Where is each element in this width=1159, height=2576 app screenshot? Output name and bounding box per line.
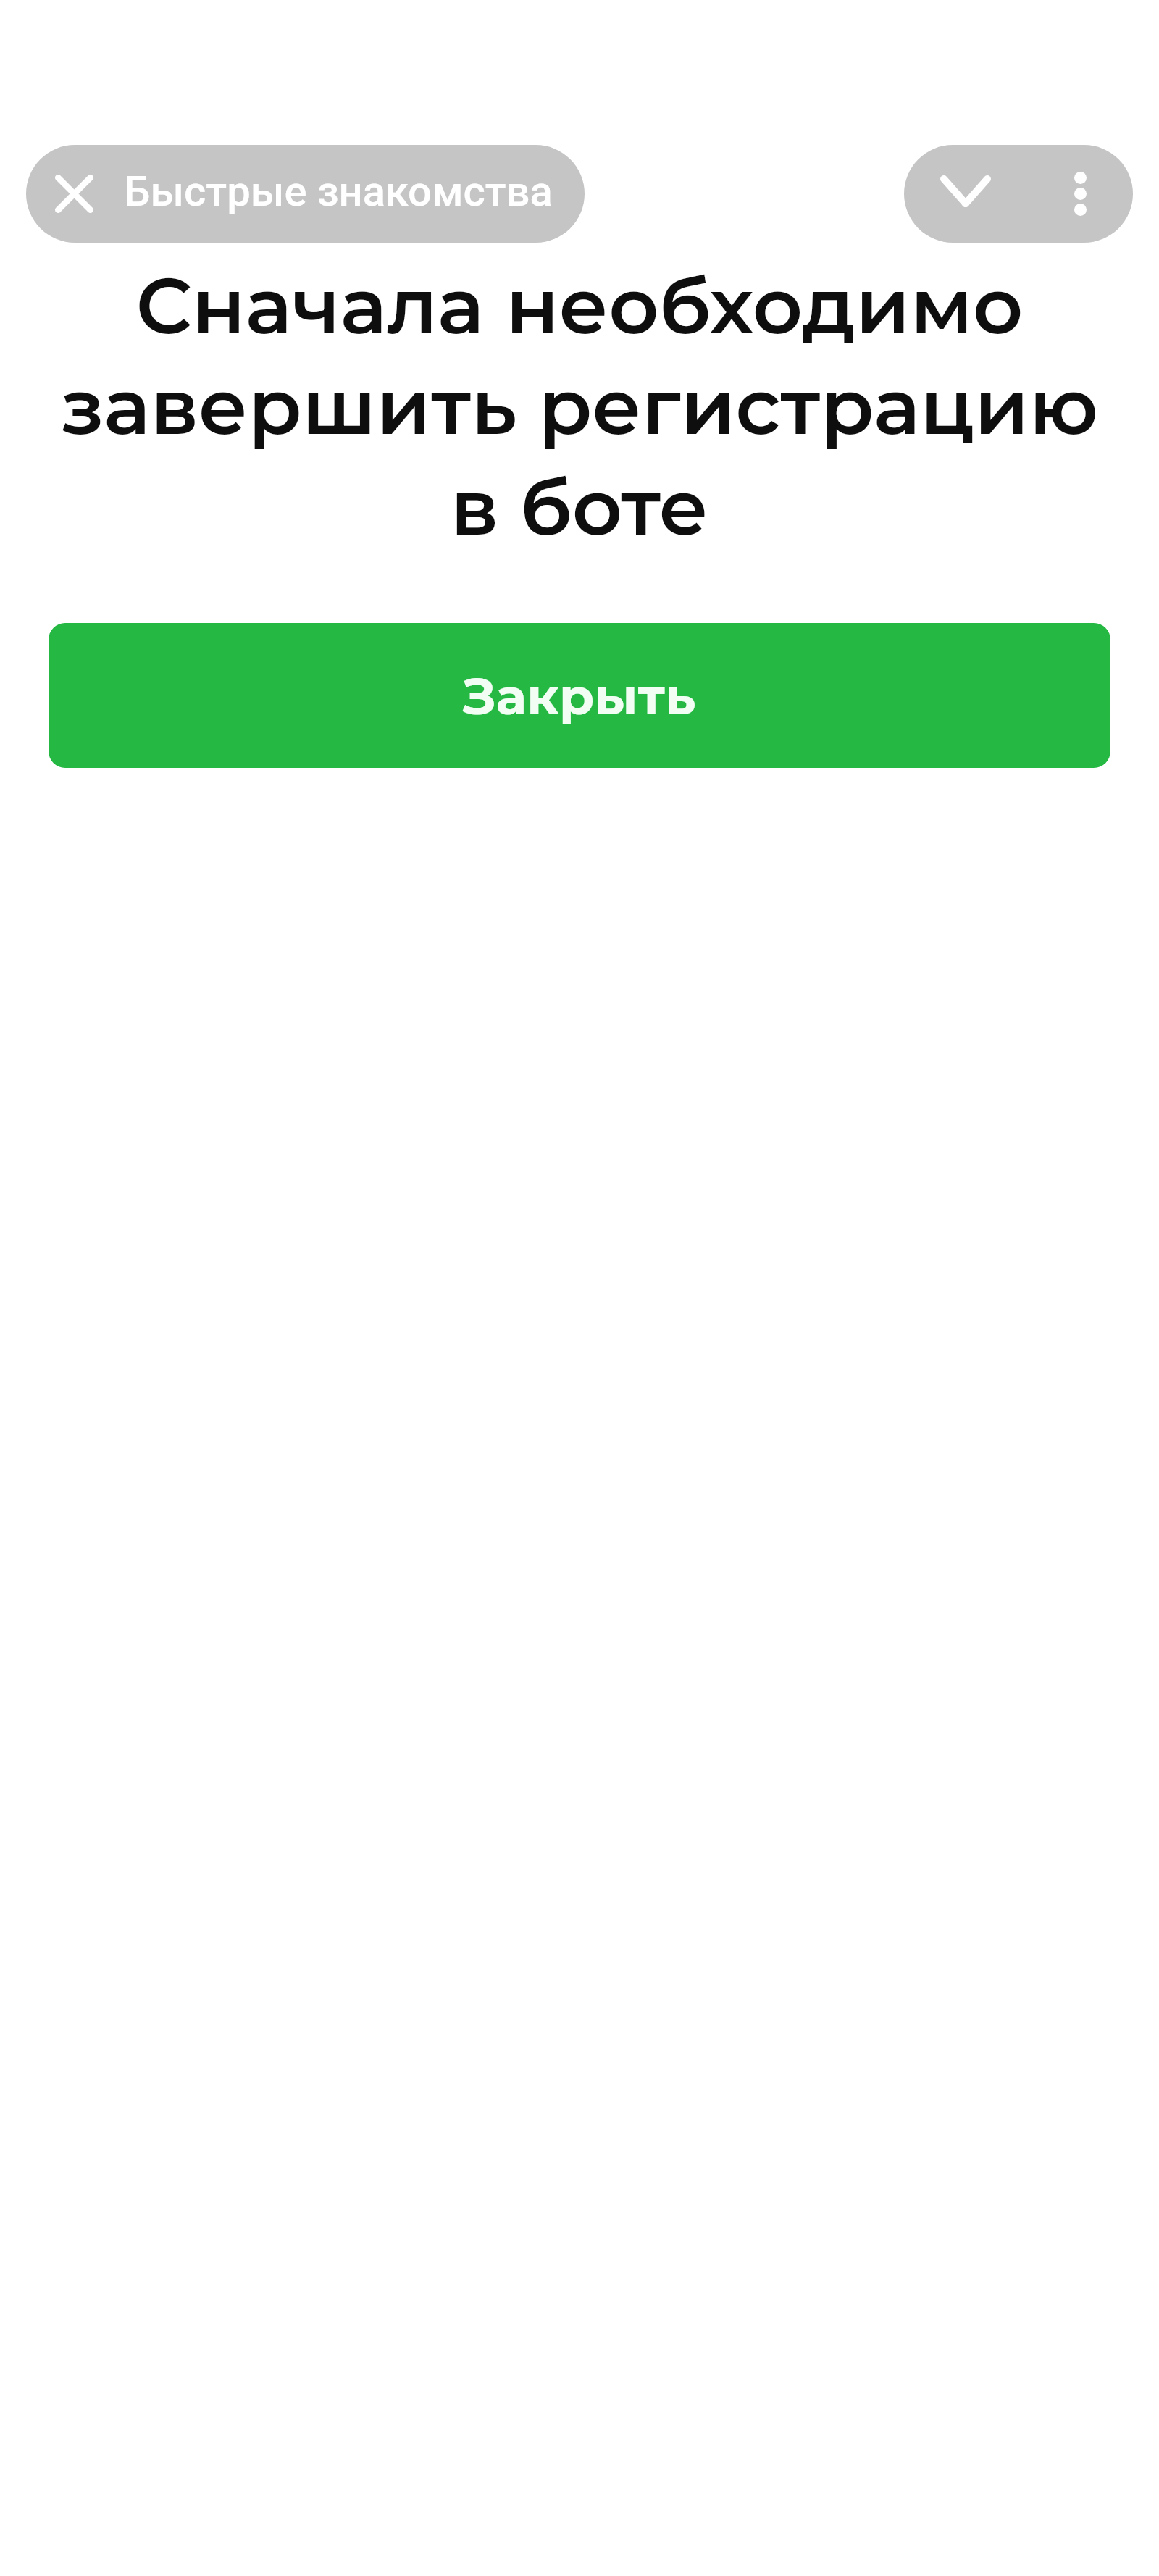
staticText: Сначала необходимо завершить регистрацию… bbox=[0, 258, 1159, 554]
button[interactable]: Закрыть bbox=[49, 623, 1110, 768]
staticText: Закрыть bbox=[463, 665, 696, 727]
button[interactable]: Collapse bbox=[904, 145, 1027, 243]
button[interactable]: Быстрые знакомства bbox=[26, 145, 585, 243]
button[interactable]: More options bbox=[1027, 145, 1133, 243]
staticText: Быстрые знакомства bbox=[124, 167, 553, 216]
